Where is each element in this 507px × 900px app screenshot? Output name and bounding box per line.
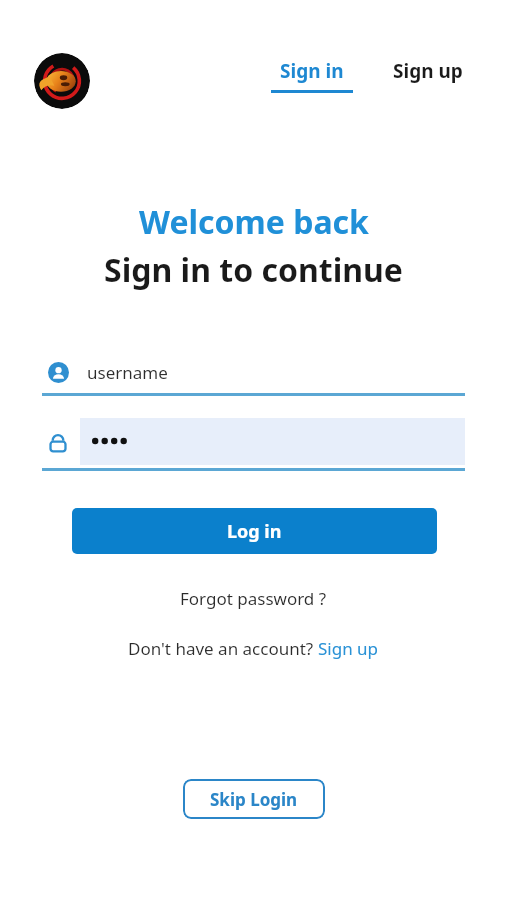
staticText: Forgot password ?	[180, 587, 327, 610]
button[interactable]: username	[42, 348, 465, 396]
button[interactable]: Sign in	[267, 58, 357, 93]
staticText: Sign up	[393, 58, 463, 84]
button[interactable]: App logo	[34, 53, 90, 109]
button[interactable]: Forgot password ?	[170, 583, 337, 614]
staticText: Don't have an account?	[128, 637, 318, 660]
staticText: Sign in	[280, 58, 344, 84]
button[interactable]	[42, 418, 465, 471]
staticText: Sign up	[318, 637, 379, 660]
button[interactable]: Log in	[72, 508, 437, 554]
staticText: username	[87, 361, 168, 384]
button[interactable]: Sign up	[389, 58, 467, 84]
button[interactable]: Sign up	[318, 637, 379, 660]
staticText: Welcome back	[139, 200, 369, 244]
staticText: Log in	[227, 519, 282, 544]
staticText: Skip Login	[210, 788, 298, 811]
button[interactable]: Skip Login	[183, 779, 325, 819]
staticText: Sign in to continue	[104, 248, 403, 292]
